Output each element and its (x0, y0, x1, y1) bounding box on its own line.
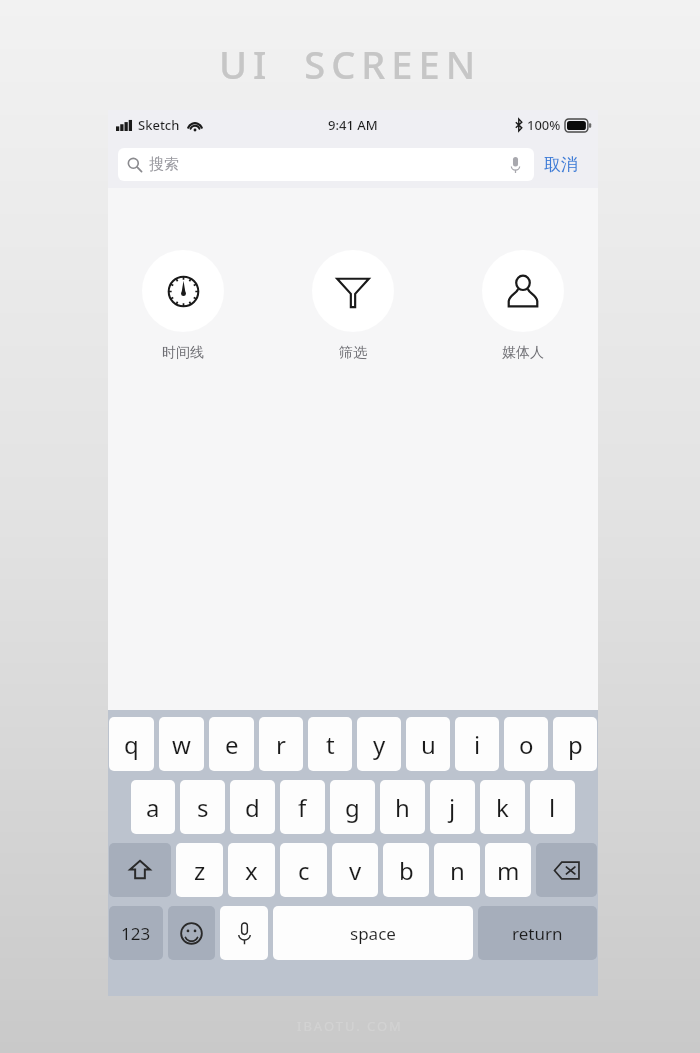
button[interactable]: q (109, 717, 154, 771)
staticText: y (373, 728, 386, 761)
button[interactable]: f (280, 780, 325, 834)
button[interactable]: u (406, 717, 450, 771)
staticText: v (349, 854, 362, 887)
button[interactable]: g (330, 780, 375, 834)
staticText: d (245, 791, 260, 824)
staticText: 9:41 AM (328, 116, 378, 134)
staticText: e (225, 728, 239, 761)
button[interactable]: y (357, 717, 401, 771)
staticText: k (496, 791, 509, 824)
staticText: UI SCREEN (219, 38, 482, 90)
button[interactable]: 取消 (534, 150, 588, 179)
staticText: 搜索 (149, 155, 179, 174)
staticText: 100% (527, 116, 561, 134)
staticText: r (276, 728, 286, 761)
staticText: o (519, 728, 534, 761)
staticText: 时间线 (162, 344, 204, 362)
button[interactable]: i (455, 717, 499, 771)
staticText: return (512, 922, 563, 945)
button[interactable]: 123 (109, 906, 163, 960)
button[interactable]: w (159, 717, 204, 771)
staticText: f (298, 791, 307, 824)
button[interactable]: n (434, 843, 480, 897)
staticText: w (172, 728, 191, 761)
button[interactable]: t (308, 717, 352, 771)
button[interactable]: Dictation (220, 906, 268, 960)
button[interactable]: d (230, 780, 275, 834)
staticText: u (421, 728, 436, 761)
button[interactable]: 搜索 (118, 148, 534, 181)
staticText: m (497, 854, 520, 887)
staticText: q (124, 728, 139, 761)
button[interactable]: p (553, 717, 597, 771)
staticText: space (350, 922, 396, 945)
button[interactable]: e (209, 717, 254, 771)
button[interactable]: k (480, 780, 525, 834)
button[interactable]: x (228, 843, 275, 897)
button[interactable]: Shift (109, 843, 171, 897)
button[interactable]: j (430, 780, 475, 834)
staticText: a (146, 791, 160, 824)
button[interactable]: return (478, 906, 597, 960)
button[interactable]: 筛选 (308, 246, 398, 366)
button[interactable]: v (332, 843, 378, 897)
staticText: s (197, 791, 209, 824)
button[interactable]: a (131, 780, 175, 834)
button[interactable]: z (176, 843, 223, 897)
button[interactable]: Voice search (505, 155, 525, 175)
button[interactable]: 媒体人 (478, 246, 568, 366)
button[interactable]: s (180, 780, 225, 834)
button[interactable]: Emoji (168, 906, 215, 960)
staticText: 123 (121, 922, 151, 945)
staticText: g (345, 791, 360, 824)
staticText: j (449, 791, 456, 824)
staticText: n (450, 854, 465, 887)
staticText: 媒体人 (502, 344, 544, 362)
staticText: h (395, 791, 410, 824)
button[interactable]: o (504, 717, 548, 771)
button[interactable]: 时间线 (138, 246, 228, 366)
staticText: z (194, 854, 206, 887)
staticText: 筛选 (339, 344, 367, 362)
button[interactable]: h (380, 780, 425, 834)
staticText: p (568, 728, 583, 761)
staticText: t (326, 728, 335, 761)
staticText: b (399, 854, 414, 887)
staticText: x (245, 854, 258, 887)
button[interactable]: c (280, 843, 327, 897)
staticText: c (298, 854, 310, 887)
button[interactable]: space (273, 906, 473, 960)
button[interactable]: b (383, 843, 429, 897)
staticText: l (549, 791, 556, 824)
button[interactable]: Backspace (536, 843, 597, 897)
staticText: Sketch (138, 116, 180, 134)
button[interactable]: r (259, 717, 303, 771)
staticText: 取消 (544, 154, 578, 175)
staticText: i (474, 728, 481, 761)
button[interactable]: l (530, 780, 575, 834)
button[interactable]: m (485, 843, 531, 897)
